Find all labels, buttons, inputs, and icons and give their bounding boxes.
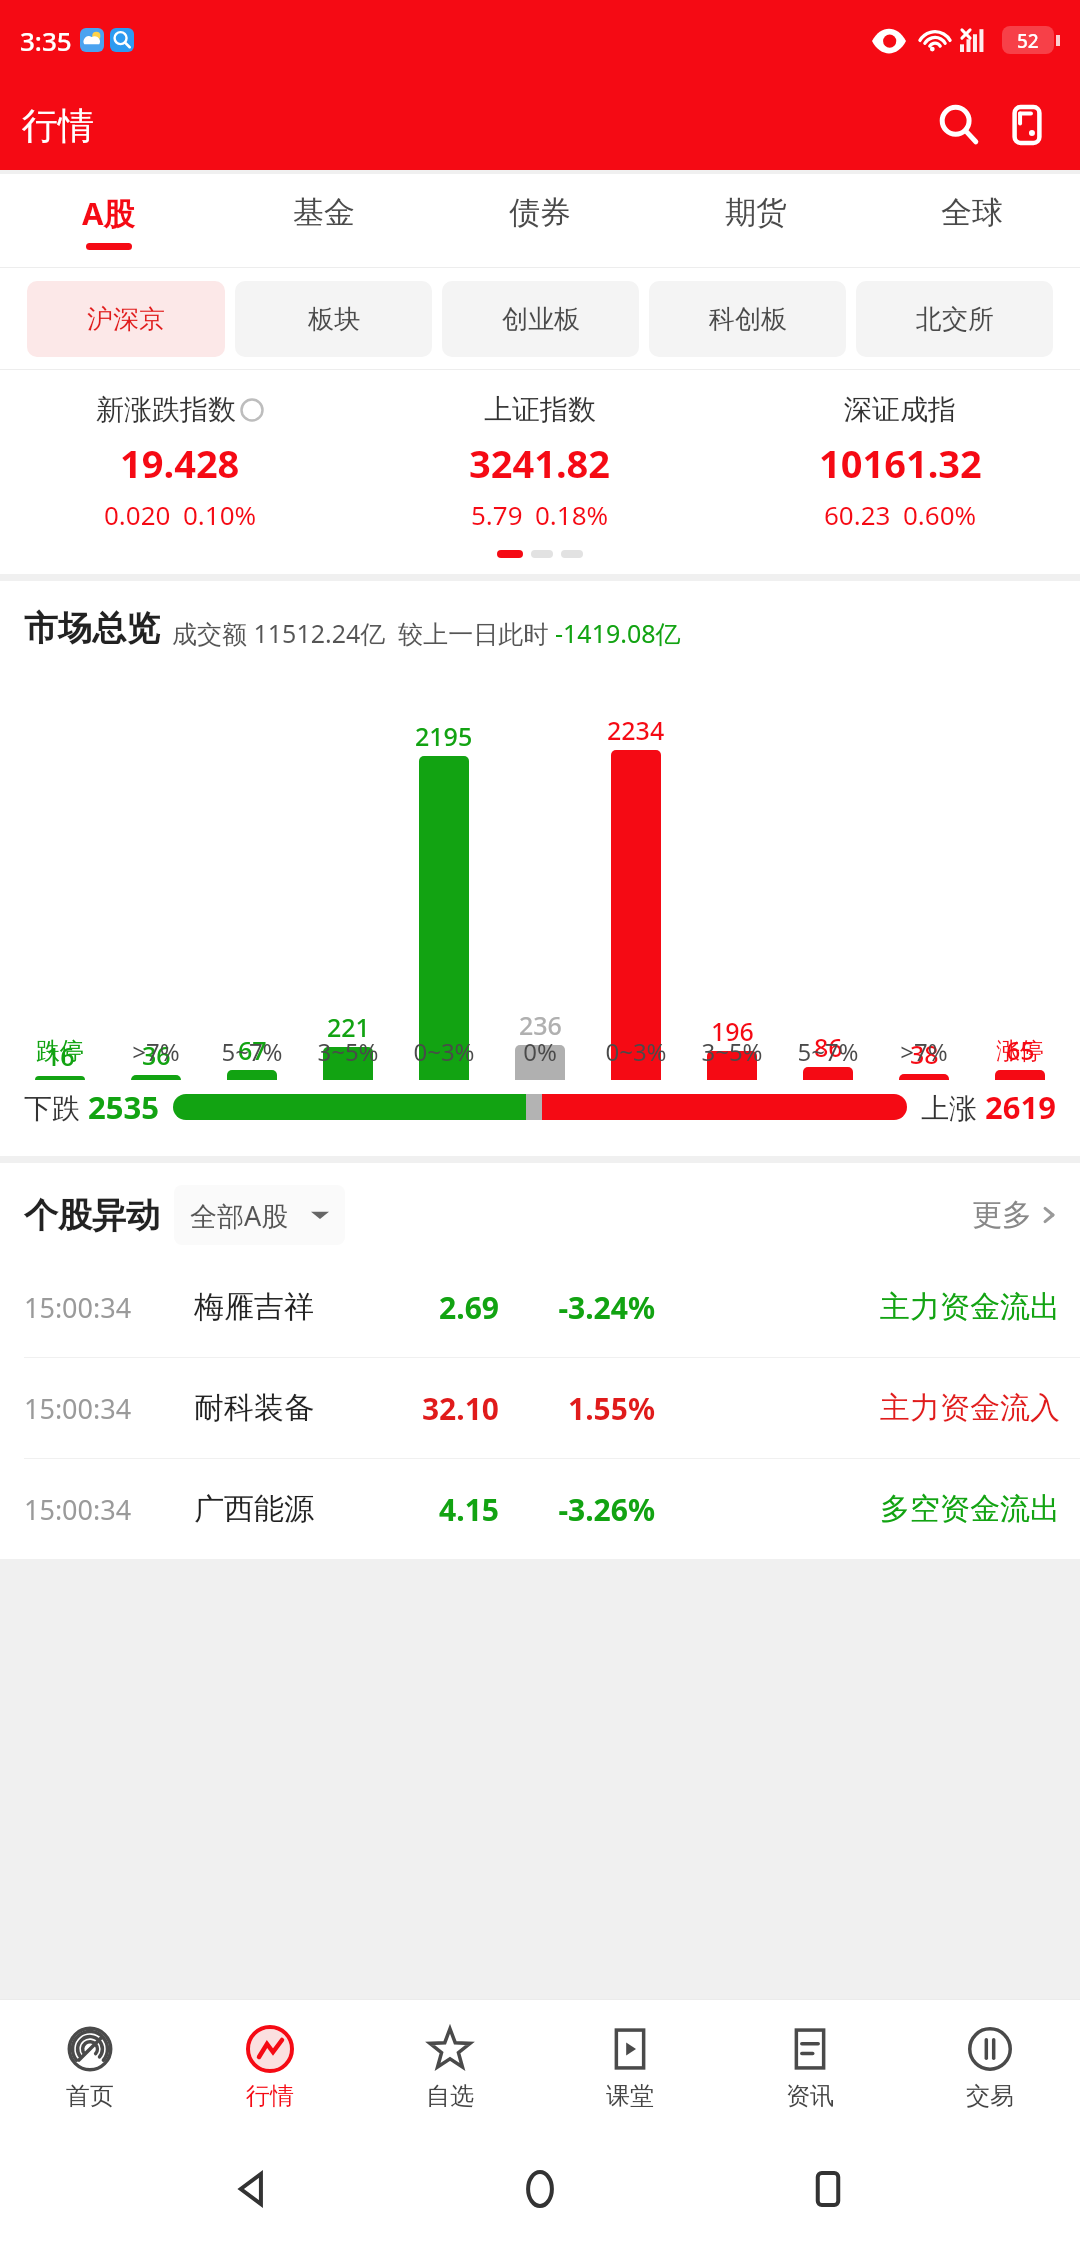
- staticText: 债券: [509, 193, 571, 232]
- staticText: 3~5%: [684, 1035, 780, 1068]
- staticText: 深证成指: [844, 392, 956, 427]
- button[interactable]: 全球: [864, 174, 1080, 267]
- staticText: >7%: [876, 1035, 972, 1068]
- button[interactable]: 期货: [648, 174, 864, 267]
- staticText: 52: [1017, 28, 1039, 52]
- staticText: 成交额 11512.24亿 较上一日此时: [172, 616, 555, 650]
- button[interactable]: 深证成指: [720, 392, 1080, 532]
- staticText: 5~7%: [780, 1035, 876, 1068]
- staticText: 2.69: [369, 1287, 499, 1328]
- staticText: 15:00:34: [24, 1289, 184, 1326]
- staticText: 5.79: [471, 497, 523, 532]
- button[interactable]: 科创板: [649, 281, 846, 357]
- staticText: 86: [814, 1030, 843, 1064]
- staticText: 广西能源: [194, 1490, 369, 1528]
- staticText: 主力资金流入: [880, 1389, 1060, 1427]
- button[interactable]: 新涨跌指数: [0, 392, 360, 532]
- button[interactable]: 基金: [216, 174, 432, 267]
- staticText: 0.10%: [183, 497, 257, 532]
- staticText: 221: [327, 1010, 370, 1044]
- staticText: 65: [1006, 1033, 1035, 1067]
- staticText: 2234: [607, 713, 665, 747]
- staticText: 沪深京: [87, 303, 165, 336]
- staticText: 0%: [492, 1035, 588, 1068]
- staticText: 3~5%: [300, 1035, 396, 1068]
- staticText: 自选: [426, 2081, 474, 2111]
- staticText: 跌停: [12, 1036, 108, 1066]
- staticText: 0.18%: [535, 497, 609, 532]
- staticText: 2619: [985, 1086, 1056, 1128]
- staticText: 60.23: [824, 497, 891, 532]
- staticText: 耐科装备: [194, 1389, 369, 1427]
- staticText: 全球: [941, 193, 1003, 232]
- staticText: 涨停: [972, 1036, 1068, 1066]
- staticText: 首页: [66, 2081, 114, 2111]
- button[interactable]: 15:00:34: [0, 1459, 1080, 1559]
- staticText: 0~3%: [588, 1035, 684, 1068]
- staticText: 3241.82: [469, 437, 611, 489]
- staticText: 15:00:34: [24, 1491, 184, 1528]
- staticText: 236: [519, 1008, 562, 1042]
- button[interactable]: 创业板: [442, 281, 639, 357]
- button[interactable]: 交易: [900, 1999, 1080, 2134]
- staticText: 个股异动: [24, 1194, 160, 1237]
- other: Recents: [793, 2154, 863, 2224]
- staticText: 67: [238, 1033, 267, 1067]
- button[interactable]: Scan code: [996, 94, 1058, 156]
- button[interactable]: A股: [0, 174, 216, 267]
- staticText: 基金: [293, 193, 355, 232]
- staticText: 19.428: [120, 437, 240, 489]
- other: Back: [218, 2154, 288, 2224]
- staticText: >7%: [108, 1035, 204, 1068]
- staticText: 上证指数: [484, 392, 596, 427]
- button[interactable]: 北交所: [856, 281, 1053, 357]
- button[interactable]: 15:00:34: [0, 1257, 1080, 1357]
- button[interactable]: Search: [928, 94, 990, 156]
- staticText: 196: [711, 1014, 754, 1048]
- staticText: 行情: [246, 2081, 294, 2111]
- button[interactable]: 课堂: [540, 1999, 720, 2134]
- button[interactable]: 15:00:34: [0, 1358, 1080, 1458]
- staticText: 主力资金流出: [880, 1288, 1060, 1326]
- staticText: -1419.08亿: [555, 616, 681, 650]
- button[interactable]: 全部A股: [174, 1185, 345, 1245]
- staticText: 课堂: [606, 2081, 654, 2111]
- staticText: -3.24%: [515, 1287, 655, 1328]
- staticText: 新涨跌指数: [96, 392, 236, 427]
- staticText: 15:00:34: [24, 1390, 184, 1427]
- button[interactable]: 上证指数: [360, 392, 720, 532]
- button[interactable]: 板块: [235, 281, 432, 357]
- staticText: 36: [142, 1038, 171, 1072]
- staticText: 38: [910, 1037, 939, 1071]
- staticText: 期货: [725, 193, 787, 232]
- staticText: -3.26%: [515, 1489, 655, 1530]
- other: Home: [505, 2154, 575, 2224]
- staticText: 北交所: [916, 303, 994, 336]
- staticText: 板块: [308, 303, 360, 336]
- staticText: 32.10: [369, 1388, 499, 1429]
- staticText: 3:35: [20, 23, 72, 58]
- staticText: 交易: [966, 2081, 1014, 2111]
- staticText: 10161.32: [819, 437, 982, 489]
- staticText: 上涨: [921, 1088, 985, 1126]
- staticText: 全部A股: [190, 1197, 289, 1234]
- button[interactable]: 自选: [360, 1999, 540, 2134]
- button[interactable]: 首页: [0, 1999, 180, 2134]
- button[interactable]: 沪深京: [27, 281, 225, 357]
- staticText: 梅雁吉祥: [194, 1288, 369, 1326]
- button[interactable]: 债券: [432, 174, 648, 267]
- staticText: 多空资金流出: [880, 1490, 1060, 1528]
- staticText: 市场总览: [24, 607, 160, 650]
- staticText: 行情: [22, 103, 94, 148]
- button[interactable]: 行情: [180, 1999, 360, 2134]
- staticText: 0.60%: [903, 497, 977, 532]
- staticText: 0~3%: [396, 1035, 492, 1068]
- staticText: 资讯: [786, 2081, 834, 2111]
- staticText: 更多: [972, 1196, 1032, 1234]
- button[interactable]: 资讯: [720, 1999, 900, 2134]
- staticText: 5~7%: [204, 1035, 300, 1068]
- staticText: 科创板: [709, 303, 787, 336]
- staticText: A股: [82, 192, 135, 234]
- staticText: 2535: [88, 1086, 159, 1128]
- button[interactable]: 更多: [972, 1196, 1060, 1234]
